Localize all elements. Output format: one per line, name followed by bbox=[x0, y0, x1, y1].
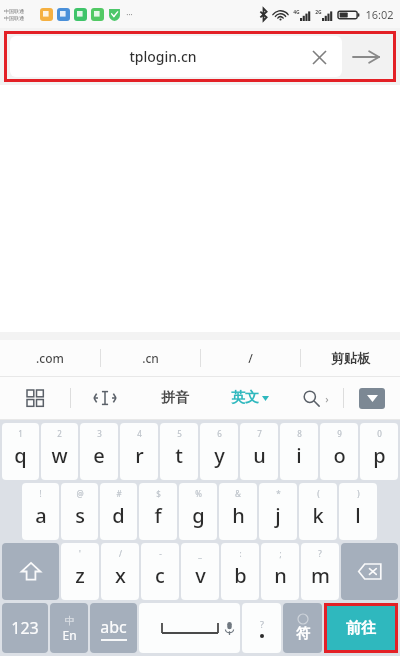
staticText: 英文 bbox=[231, 389, 259, 407]
staticText: 符 bbox=[296, 625, 310, 643]
button[interactable]: 2 bbox=[41, 423, 78, 480]
staticText: x bbox=[115, 562, 126, 589]
button[interactable]: .com bbox=[0, 340, 100, 376]
staticText: h bbox=[232, 502, 245, 529]
button[interactable]: 0 bbox=[360, 423, 398, 480]
staticText: / bbox=[119, 548, 122, 559]
button[interactable]: Space bbox=[139, 603, 240, 653]
staticText: 5 bbox=[177, 428, 182, 439]
button[interactable]: Backspace bbox=[341, 543, 398, 600]
staticText: ( bbox=[317, 488, 320, 499]
staticText: r bbox=[135, 442, 144, 469]
button[interactable]: ) bbox=[339, 483, 377, 540]
staticText: v bbox=[195, 562, 206, 589]
button[interactable]: Keyboard options bbox=[0, 377, 70, 419]
staticText: 9 bbox=[337, 428, 342, 439]
button[interactable]: 前往 bbox=[327, 606, 395, 650]
button[interactable]: 7 bbox=[240, 423, 278, 480]
button[interactable]: 6 bbox=[200, 423, 238, 480]
staticText: 剪贴板 bbox=[331, 350, 370, 366]
button[interactable]: Hide keyboard bbox=[344, 377, 400, 419]
staticText: 1 bbox=[18, 428, 23, 439]
staticText: q bbox=[14, 442, 27, 469]
staticText: ? bbox=[260, 618, 264, 630]
staticText: 2G bbox=[315, 9, 322, 16]
button[interactable]: ? bbox=[242, 603, 281, 653]
button[interactable]: $ bbox=[139, 483, 177, 540]
button[interactable]: 8 bbox=[280, 423, 318, 480]
staticText: u bbox=[253, 442, 266, 469]
button[interactable]: Cursor move bbox=[71, 377, 139, 419]
staticText: b bbox=[234, 562, 247, 589]
staticText: n bbox=[274, 562, 287, 589]
button[interactable]: # bbox=[100, 483, 137, 540]
staticText: j bbox=[275, 502, 281, 529]
staticText: w bbox=[51, 442, 68, 469]
button[interactable]: & bbox=[219, 483, 257, 540]
button[interactable]: / bbox=[101, 543, 139, 600]
button[interactable]: tplogin.cn bbox=[10, 36, 342, 77]
button[interactable]: @ bbox=[61, 483, 98, 540]
staticText: 2 bbox=[57, 428, 62, 439]
staticText: 3 bbox=[97, 428, 102, 439]
staticText: : bbox=[239, 548, 242, 559]
button[interactable]: Clear bbox=[306, 44, 332, 70]
button[interactable]: ? bbox=[301, 543, 339, 600]
staticText: ) bbox=[357, 488, 360, 499]
staticText: / bbox=[248, 350, 253, 366]
staticText: c bbox=[155, 562, 165, 589]
button[interactable]: / bbox=[201, 340, 300, 376]
button[interactable]: - bbox=[141, 543, 179, 600]
button[interactable]: _ bbox=[181, 543, 219, 600]
staticText: p bbox=[373, 442, 386, 469]
button[interactable]: : bbox=[221, 543, 259, 600]
staticText: % bbox=[195, 488, 202, 499]
staticText: .com bbox=[36, 350, 64, 366]
button[interactable]: 3 bbox=[80, 423, 118, 480]
button[interactable]: abc bbox=[90, 603, 137, 653]
staticText: ; bbox=[279, 548, 282, 559]
button[interactable]: Search bbox=[289, 377, 343, 419]
staticText: 7 bbox=[257, 428, 262, 439]
staticText: 0 bbox=[377, 428, 382, 439]
staticText: › bbox=[325, 391, 329, 406]
staticText: ··· bbox=[126, 9, 133, 20]
button[interactable]: 符 bbox=[283, 603, 322, 653]
button[interactable]: ' bbox=[61, 543, 99, 600]
staticText: 拼音 bbox=[161, 389, 189, 407]
staticText: ! bbox=[39, 488, 42, 499]
button[interactable]: 拼音 bbox=[139, 377, 211, 419]
button[interactable]: * bbox=[259, 483, 297, 540]
staticText: i bbox=[296, 442, 302, 469]
staticText: 8 bbox=[297, 428, 302, 439]
staticText: 中 bbox=[65, 614, 75, 627]
button[interactable]: ( bbox=[299, 483, 337, 540]
button[interactable]: 4 bbox=[120, 423, 158, 480]
staticText: a bbox=[35, 502, 47, 529]
button[interactable]: ! bbox=[22, 483, 59, 540]
staticText: d bbox=[112, 502, 125, 529]
button[interactable]: Shift bbox=[2, 543, 59, 600]
staticText: En bbox=[62, 627, 77, 643]
staticText: 16:02 bbox=[365, 7, 394, 22]
button[interactable]: 9 bbox=[320, 423, 358, 480]
button[interactable]: 123 bbox=[2, 603, 48, 653]
button[interactable]: Go bbox=[342, 36, 390, 77]
staticText: 4G bbox=[293, 9, 300, 16]
button[interactable]: ; bbox=[261, 543, 299, 600]
button[interactable]: 中 bbox=[50, 603, 88, 653]
staticText: m bbox=[311, 562, 330, 589]
staticText: f bbox=[154, 502, 162, 529]
button[interactable]: 剪贴板 bbox=[301, 340, 400, 376]
staticText: s bbox=[75, 502, 85, 529]
staticText: # bbox=[116, 488, 122, 499]
button[interactable]: .cn bbox=[101, 340, 200, 376]
button[interactable]: 英文 bbox=[211, 377, 289, 419]
staticText: ? bbox=[318, 548, 322, 559]
button[interactable]: 5 bbox=[160, 423, 198, 480]
staticText: .cn bbox=[142, 350, 159, 366]
button[interactable]: 1 bbox=[2, 423, 39, 480]
staticText: k bbox=[312, 502, 324, 529]
staticText: l bbox=[355, 502, 361, 529]
button[interactable]: % bbox=[179, 483, 217, 540]
